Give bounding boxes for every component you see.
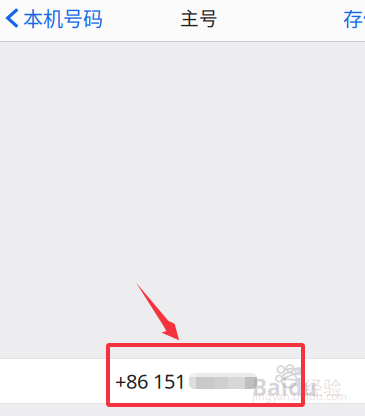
button[interactable]: 存储 <box>343 0 365 42</box>
staticText: 存储 <box>343 3 365 32</box>
staticText: 经验 <box>304 373 342 400</box>
staticText: +86 151 <box>115 368 186 394</box>
staticText: Baidu <box>252 372 317 402</box>
staticText: 本机号码 <box>23 3 103 32</box>
button[interactable]: 本机号码 <box>0 0 109 42</box>
staticText: jingyan.baidu.com <box>252 389 347 403</box>
staticText: 主号 <box>180 3 218 30</box>
